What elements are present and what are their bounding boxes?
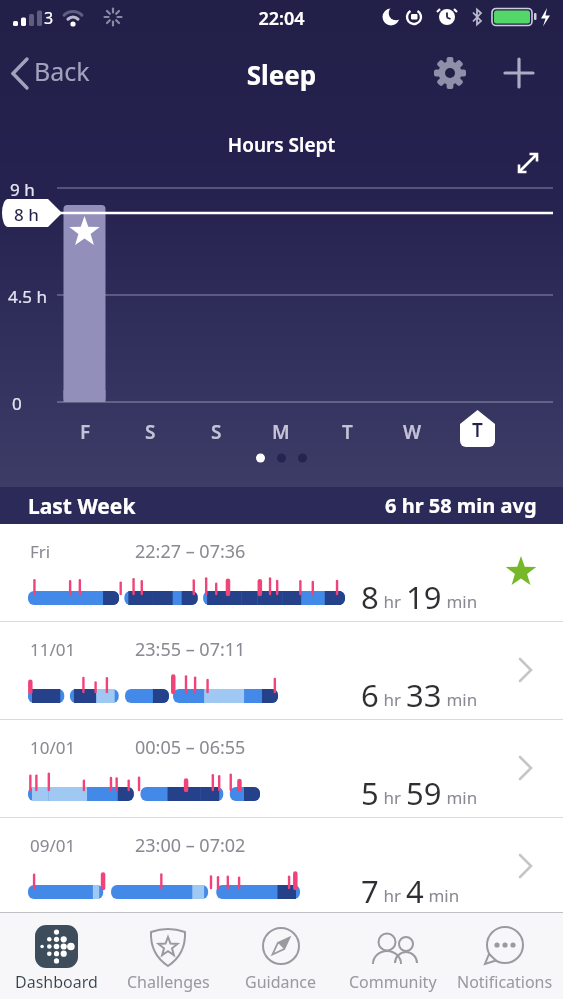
staticText: 59 <box>406 772 442 814</box>
staticText: T <box>342 419 353 445</box>
staticText: 7 <box>361 870 379 912</box>
staticText: Back <box>34 54 90 88</box>
staticText: Sleep <box>0 57 563 92</box>
staticText: min <box>424 884 460 907</box>
staticText: Notifications <box>457 971 553 993</box>
button[interactable]: Notifications <box>449 912 561 999</box>
button[interactable] <box>0 720 563 818</box>
staticText: 33 <box>406 674 442 716</box>
staticText: Fri <box>30 540 51 563</box>
button[interactable]: Dashboard <box>0 912 112 999</box>
staticText: 3 <box>44 7 54 29</box>
button[interactable]: Back <box>8 52 118 94</box>
staticText: min <box>442 688 478 711</box>
button[interactable] <box>514 658 538 682</box>
staticText: Challenges <box>127 971 210 993</box>
staticText: Hours Slept <box>0 132 563 158</box>
staticText: T <box>472 417 483 443</box>
staticText: Community <box>349 971 437 993</box>
button[interactable]: Community <box>337 912 449 999</box>
staticText: 5 <box>361 772 379 814</box>
staticText: 10/01 <box>30 736 76 759</box>
staticText: min <box>442 786 478 809</box>
button[interactable] <box>0 524 563 622</box>
staticText: S <box>211 419 222 445</box>
staticText: 23:00 – 07:02 <box>135 833 246 858</box>
staticText: hr <box>379 884 406 907</box>
staticText: W <box>403 419 422 445</box>
button[interactable]: Guidance <box>225 912 337 999</box>
staticText: 19 <box>406 576 442 618</box>
staticText: 23:55 – 07:11 <box>135 637 246 662</box>
staticText: Last Week <box>28 492 136 521</box>
staticText: hr <box>379 786 406 809</box>
staticText: 4 <box>406 870 424 912</box>
staticText: Guidance <box>245 971 317 993</box>
staticText: hr <box>379 688 406 711</box>
button[interactable] <box>0 622 563 720</box>
staticText: F <box>80 419 91 445</box>
button[interactable] <box>0 818 563 912</box>
staticText: 22:27 – 07:36 <box>135 539 246 564</box>
staticText: min <box>442 590 478 613</box>
staticText: 9 h <box>10 178 35 201</box>
staticText: S <box>145 419 156 445</box>
staticText: 6 <box>361 674 379 716</box>
staticText: 11/01 <box>30 638 76 661</box>
staticText: 8 <box>361 576 379 618</box>
button[interactable] <box>514 854 538 878</box>
button[interactable] <box>497 51 541 95</box>
button[interactable] <box>503 554 539 590</box>
staticText: Dashboard <box>15 971 98 993</box>
button[interactable] <box>514 756 538 780</box>
staticText: 00:05 – 06:55 <box>135 735 246 760</box>
staticText: 4.5 h <box>8 285 47 308</box>
staticText: M <box>272 419 290 445</box>
button[interactable]: Challenges <box>112 912 224 999</box>
staticText: 8 h <box>14 203 39 226</box>
staticText: hr <box>379 590 406 613</box>
staticText: 6 hr 58 min avg <box>385 492 537 519</box>
staticText: 0 <box>12 392 22 415</box>
staticText: 09/01 <box>30 834 76 857</box>
button[interactable] <box>428 51 472 95</box>
staticText: 22:04 <box>0 6 563 31</box>
